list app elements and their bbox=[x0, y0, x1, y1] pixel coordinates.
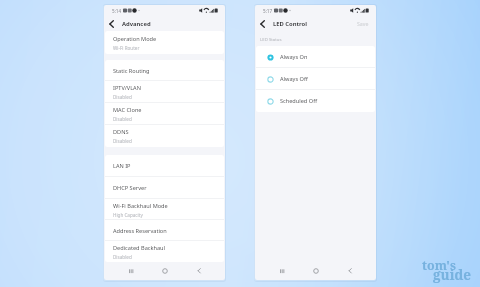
staticText: Dedicated Backhaul bbox=[113, 244, 165, 252]
button[interactable]: Back bbox=[333, 262, 367, 280]
staticText: Always On bbox=[280, 53, 308, 61]
staticText: LED Control bbox=[273, 20, 307, 28]
button[interactable]: Address Reservation bbox=[105, 220, 224, 241]
button[interactable]: DDNS bbox=[105, 125, 224, 147]
staticText: Disabled bbox=[113, 94, 132, 100]
button[interactable]: Recent apps bbox=[265, 262, 299, 280]
staticText: DDNS bbox=[113, 128, 129, 136]
staticText: 5:14 bbox=[112, 8, 122, 14]
button[interactable]: DHCP Server bbox=[105, 177, 224, 199]
staticText: Static Routing bbox=[113, 67, 150, 75]
button[interactable]: Back bbox=[257, 18, 268, 29]
staticText: Disabled bbox=[113, 254, 132, 260]
staticText: guide bbox=[433, 265, 472, 284]
staticText: MAC Clone bbox=[113, 106, 142, 114]
button[interactable]: Operation Mode bbox=[105, 31, 224, 54]
staticText: Wi-Fi Router bbox=[113, 45, 140, 51]
button[interactable]: Back bbox=[182, 262, 216, 280]
button[interactable]: Home bbox=[299, 262, 333, 280]
staticText: Save bbox=[357, 20, 369, 27]
button[interactable]: IPTV/VLAN bbox=[105, 81, 224, 103]
staticText: LED Status bbox=[260, 36, 282, 42]
staticText: High Capacity bbox=[113, 212, 143, 218]
button[interactable]: Back bbox=[106, 18, 117, 29]
staticText: tom's bbox=[422, 257, 456, 274]
staticText: Operation Mode bbox=[113, 35, 157, 43]
button[interactable]: Wi-Fi Backhaul Mode bbox=[105, 199, 224, 220]
staticText: DHCP Server bbox=[113, 184, 147, 192]
button[interactable]: Recent apps bbox=[114, 262, 148, 280]
button[interactable]: Save bbox=[356, 19, 370, 28]
staticText: Advanced bbox=[122, 20, 151, 28]
button[interactable]: Always Off bbox=[256, 68, 375, 90]
button[interactable]: Home bbox=[148, 262, 182, 280]
staticText: Scheduled Off bbox=[280, 97, 317, 105]
staticText: 5:17 bbox=[263, 8, 273, 14]
button[interactable]: Dedicated Backhaul bbox=[105, 241, 224, 262]
button[interactable]: LAN IP bbox=[105, 155, 224, 177]
staticText: LAN IP bbox=[113, 162, 131, 170]
staticText: Disabled bbox=[113, 116, 132, 122]
button[interactable]: MAC Clone bbox=[105, 103, 224, 125]
staticText: Address Reservation bbox=[113, 227, 167, 235]
staticText: Wi-Fi Backhaul Mode bbox=[113, 202, 168, 210]
button[interactable]: Scheduled Off bbox=[256, 90, 375, 112]
staticText: Disabled bbox=[113, 138, 132, 144]
staticText: Always Off bbox=[280, 75, 308, 83]
staticText: IPTV/VLAN bbox=[113, 84, 141, 92]
button[interactable]: Static Routing bbox=[105, 60, 224, 81]
button[interactable]: Always On bbox=[256, 46, 375, 68]
